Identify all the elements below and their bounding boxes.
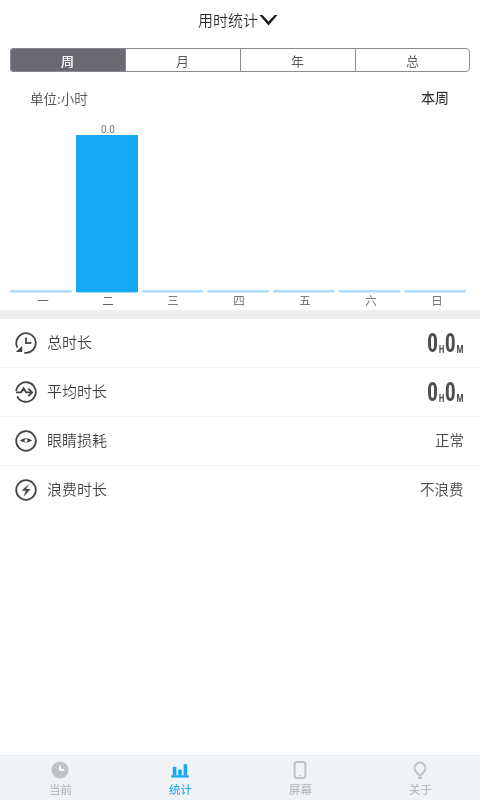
button[interactable]: 平均时长: [0, 368, 480, 416]
staticText: H: [439, 343, 445, 356]
staticText: 不浪费: [420, 478, 464, 499]
button[interactable]: 关于: [360, 756, 480, 800]
button[interactable]: 周: [10, 48, 125, 72]
staticText: 单位:小时: [30, 88, 88, 108]
staticText: 周: [61, 51, 75, 70]
staticText: 关于: [409, 781, 432, 798]
button[interactable]: 用时统计: [194, 5, 282, 35]
button[interactable]: 浪费时长: [0, 466, 480, 514]
staticText: 年: [291, 51, 305, 70]
button[interactable]: 总: [356, 48, 470, 72]
staticText: 0: [445, 328, 456, 358]
button[interactable]: 统计: [120, 756, 240, 800]
staticText: 一: [37, 292, 49, 309]
staticText: 平均时长: [47, 380, 108, 402]
staticText: 月: [176, 51, 190, 70]
staticText: 正常: [435, 429, 464, 450]
staticText: 当前: [49, 781, 72, 798]
staticText: 0: [427, 328, 439, 358]
button[interactable]: 眼睛损耗: [0, 417, 480, 465]
staticText: 三: [167, 292, 179, 309]
button[interactable]: 总时长: [0, 319, 480, 367]
staticText: 0: [445, 377, 456, 407]
staticText: 五: [299, 292, 311, 309]
button[interactable]: 年: [241, 48, 355, 72]
button[interactable]: 屏幕: [240, 756, 360, 800]
staticText: 屏幕: [289, 781, 312, 798]
staticText: 本周: [421, 87, 449, 107]
staticText: M: [456, 392, 464, 405]
staticText: M: [456, 343, 464, 356]
button[interactable]: 月: [126, 48, 240, 72]
staticText: 二: [102, 292, 114, 309]
staticText: 0.0: [101, 124, 115, 136]
staticText: 四: [233, 292, 245, 309]
staticText: 浪费时长: [47, 478, 108, 500]
staticText: 总时长: [47, 331, 93, 353]
staticText: 总: [406, 51, 420, 70]
button[interactable]: 当前: [0, 756, 120, 800]
staticText: 六: [365, 292, 377, 309]
staticText: 眼睛损耗: [47, 429, 108, 451]
staticText: H: [439, 392, 445, 405]
staticText: 统计: [169, 781, 192, 798]
staticText: 0: [427, 377, 439, 407]
staticText: 日: [431, 292, 443, 309]
staticText: 用时统计: [198, 9, 259, 31]
